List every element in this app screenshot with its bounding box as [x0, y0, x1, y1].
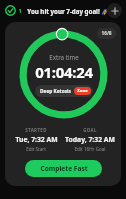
staticText: Today, 7:32 AM: [65, 135, 115, 144]
staticText: Tue, 7:32 AM: [15, 135, 58, 144]
staticText: STARTED: [25, 127, 47, 133]
button[interactable]: Streak: [4, 4, 23, 17]
button[interactable]: STARTED: [9, 126, 63, 153]
button[interactable]: Complete Fast: [25, 160, 102, 177]
other: Streak: [5, 5, 16, 16]
staticText: Complete Fast: [40, 164, 88, 173]
button[interactable]: GOAL: [63, 126, 117, 153]
staticText: 1: [18, 7, 22, 14]
staticText: Extra time: [49, 53, 79, 61]
staticText: Edit Start: [26, 146, 46, 152]
staticText: Edit 16Hr Goal: [74, 146, 106, 152]
staticText: Zone: [77, 88, 88, 94]
button[interactable]: 16/8: [97, 28, 116, 39]
staticText: 16/8: [101, 30, 112, 37]
button[interactable]: Add: [107, 3, 122, 18]
staticText: GOAL: [83, 127, 97, 133]
staticText: Deep Ketosis: [40, 88, 71, 95]
staticText: 01:04:24: [35, 62, 93, 82]
button[interactable]: Deep Ketosis: [35, 85, 93, 97]
staticText: You hit your 7-day goal!: [27, 7, 100, 15]
